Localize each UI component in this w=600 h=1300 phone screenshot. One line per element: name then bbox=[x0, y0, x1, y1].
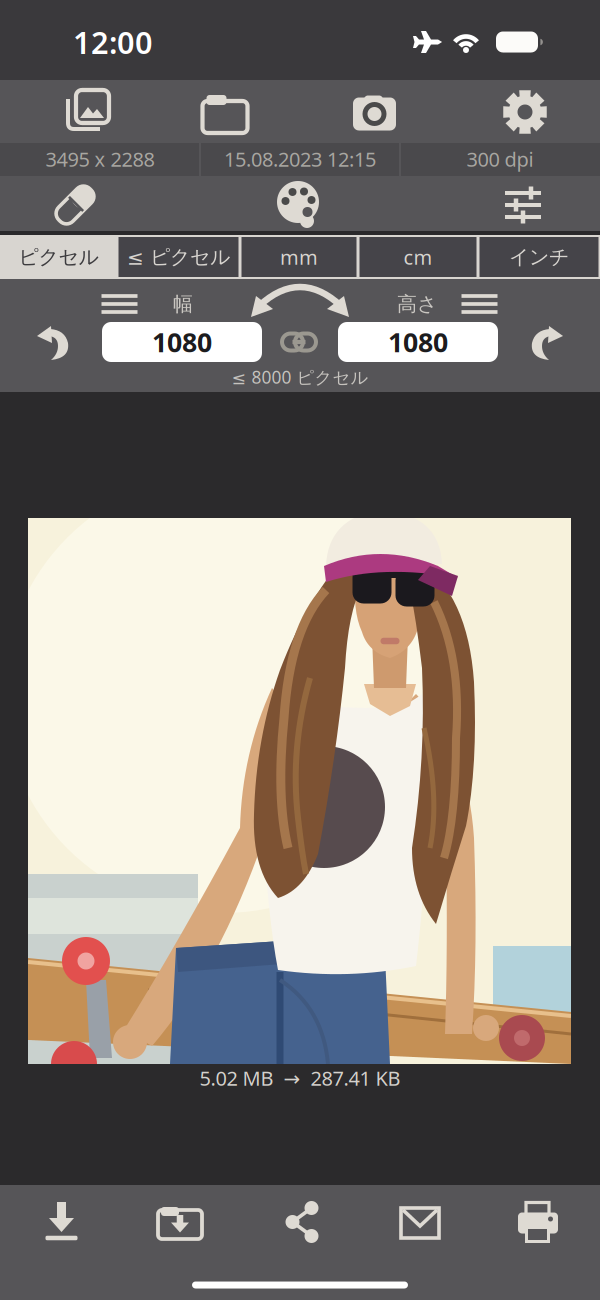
staticText: 3495 x 2288 bbox=[45, 146, 154, 172]
button[interactable] bbox=[455, 287, 505, 321]
button[interactable]: ≤ ピクセル bbox=[117, 235, 240, 279]
button[interactable]: ピクセル bbox=[0, 235, 117, 279]
button[interactable] bbox=[165, 83, 285, 143]
staticText: mm bbox=[280, 244, 318, 270]
button[interactable]: インチ bbox=[478, 235, 600, 279]
button[interactable] bbox=[26, 319, 82, 369]
staticText: 15.08.2023 12:15 bbox=[224, 146, 376, 172]
button[interactable] bbox=[248, 283, 352, 321]
staticText: 1080 bbox=[152, 324, 212, 360]
button[interactable]: 1080 bbox=[102, 322, 262, 362]
button[interactable] bbox=[493, 1192, 583, 1252]
button[interactable]: mm bbox=[240, 235, 358, 279]
staticText: ピクセル bbox=[18, 245, 98, 269]
staticText: 5.02 MB → 287.41 KB bbox=[199, 1065, 400, 1091]
staticText: インチ bbox=[509, 245, 569, 269]
button[interactable] bbox=[239, 176, 359, 232]
button[interactable] bbox=[315, 83, 435, 143]
button[interactable] bbox=[465, 82, 585, 142]
staticText: cm bbox=[403, 244, 432, 270]
button[interactable] bbox=[257, 1192, 347, 1252]
staticText: 幅 bbox=[173, 292, 193, 316]
staticText: 12:00 bbox=[73, 22, 153, 62]
button[interactable] bbox=[463, 177, 583, 233]
staticText: 1080 bbox=[388, 324, 448, 360]
button[interactable] bbox=[375, 1193, 465, 1253]
staticText: ≤ 8000 ピクセル bbox=[231, 365, 368, 388]
button[interactable] bbox=[518, 319, 574, 369]
button[interactable] bbox=[17, 1191, 107, 1251]
staticText: 高さ bbox=[397, 292, 437, 316]
button[interactable] bbox=[17, 82, 137, 142]
button[interactable]: 1080 bbox=[338, 322, 498, 362]
button[interactable]: cm bbox=[358, 235, 478, 279]
button[interactable] bbox=[15, 177, 135, 233]
staticText: 300 dpi bbox=[466, 146, 533, 172]
staticText: ≤ ピクセル bbox=[127, 245, 230, 269]
button[interactable] bbox=[135, 1192, 225, 1252]
button[interactable] bbox=[95, 287, 145, 321]
button[interactable] bbox=[277, 327, 321, 357]
